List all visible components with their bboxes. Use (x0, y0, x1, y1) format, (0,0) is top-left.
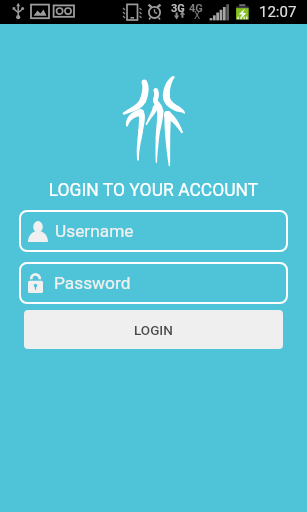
staticText: LOGIN TO YOUR ACCOUNT (0, 180, 307, 201)
staticText: X (194, 10, 201, 22)
staticText: 4G (189, 2, 203, 15)
button[interactable]: Username (19, 210, 288, 252)
staticText: Username (55, 221, 134, 241)
button[interactable]: LOGIN (24, 310, 283, 349)
staticText: 12:07 (259, 3, 297, 21)
staticText: LOGIN (134, 322, 173, 338)
staticText: 3G (171, 2, 185, 15)
button[interactable]: Password (19, 262, 288, 304)
staticText: Password (54, 273, 131, 293)
